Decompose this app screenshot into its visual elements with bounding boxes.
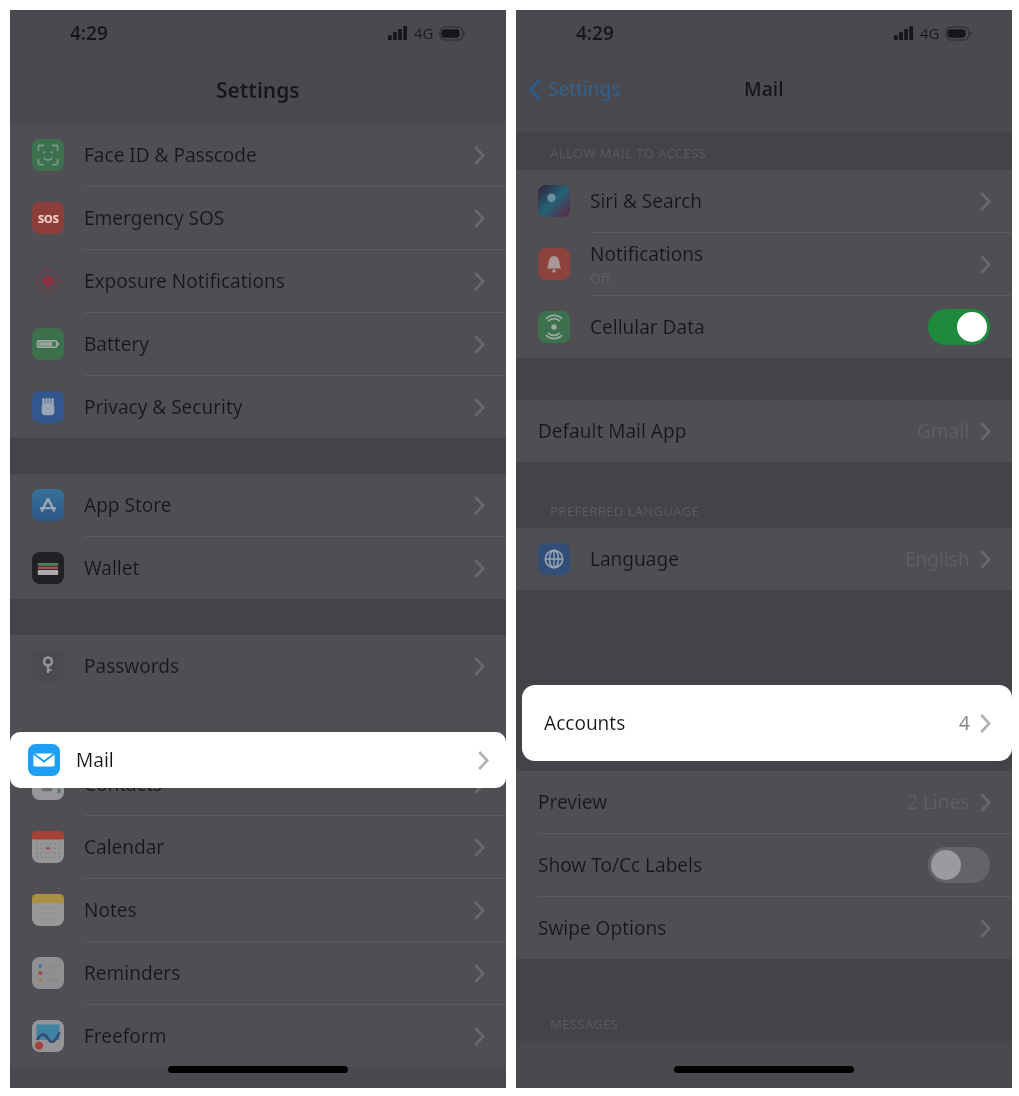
button[interactable]: Off	[928, 847, 990, 883]
staticText: MESSAGE LIST	[550, 745, 642, 763]
staticText: Wallet	[84, 555, 140, 581]
button[interactable]: Default Mail App	[516, 400, 1012, 462]
staticText: Mail	[744, 76, 784, 102]
button[interactable]: Wallet	[10, 537, 506, 599]
staticText: Emergency SOS	[84, 205, 225, 231]
button[interactable]: Privacy & Security	[10, 376, 506, 438]
staticText: App Store	[84, 492, 172, 518]
staticText: Swipe Options	[538, 915, 667, 941]
button[interactable]: On	[928, 309, 990, 345]
staticText: Settings	[548, 76, 621, 102]
staticText: Passwords	[84, 653, 180, 679]
staticText: SOS	[38, 211, 59, 226]
staticText: Face ID & Passcode	[84, 142, 257, 168]
staticText: ALLOW MAIL TO ACCESS	[550, 144, 707, 162]
staticText: PREFERRED LANGUAGE	[550, 502, 700, 520]
staticText: Privacy & Security	[84, 394, 243, 420]
button[interactable]: SOS	[10, 187, 506, 249]
staticText: Show To/Cc Labels	[538, 852, 703, 878]
staticText: Preview	[538, 789, 608, 815]
staticText: Freeform	[84, 1023, 167, 1049]
staticText: Off	[590, 269, 611, 288]
staticText: Mail	[76, 747, 114, 773]
staticText: Language	[590, 546, 679, 572]
button[interactable]: Language	[516, 528, 1012, 590]
button[interactable]: Freeform	[10, 1005, 506, 1067]
button[interactable]: Show To/Cc Labels	[516, 834, 1012, 896]
staticText: Reminders	[84, 960, 181, 986]
staticText: 4:29	[576, 20, 614, 46]
button[interactable]: Preview	[516, 771, 1012, 833]
staticText: Contacts	[84, 771, 162, 797]
staticText: Settings	[216, 76, 300, 105]
button[interactable]: Cellular Data	[516, 296, 1012, 358]
button[interactable]: Calendar	[10, 816, 506, 878]
button[interactable]: Contacts	[10, 753, 506, 815]
button[interactable]: Notifications	[516, 233, 1012, 295]
button[interactable]: Swipe Options	[516, 897, 1012, 959]
staticText: Siri & Search	[590, 188, 703, 214]
button[interactable]: Settings	[516, 72, 629, 106]
button[interactable]: Battery	[10, 313, 506, 375]
button[interactable]: Mail	[10, 732, 506, 788]
staticText: 4G	[920, 23, 940, 43]
staticText: Battery	[84, 331, 149, 357]
staticText: Notifications	[590, 241, 704, 267]
button[interactable]: Accounts	[522, 685, 1012, 761]
staticText: Default Mail App	[538, 418, 687, 444]
staticText: Cellular Data	[590, 314, 705, 340]
button[interactable]: Passwords	[10, 635, 506, 697]
staticText: Gmail	[917, 418, 970, 444]
button[interactable]: Exposure Notifications	[10, 250, 506, 312]
staticText: English	[905, 546, 970, 572]
staticText: Notes	[84, 897, 137, 923]
staticText: 4	[959, 710, 970, 736]
staticText: 2 Lines	[907, 789, 970, 815]
button[interactable]: Notes	[10, 879, 506, 941]
staticText: Calendar	[84, 834, 165, 860]
button[interactable]: Reminders	[10, 942, 506, 1004]
staticText: Exposure Notifications	[84, 268, 285, 294]
staticText: 4G	[414, 23, 434, 43]
staticText: Accounts	[544, 710, 626, 736]
button[interactable]: Face ID & Passcode	[10, 124, 506, 186]
staticText: 4:29	[70, 20, 108, 46]
button[interactable]: App Store	[10, 474, 506, 536]
button[interactable]: Siri & Search	[516, 170, 1012, 232]
staticText: MESSAGES	[550, 1015, 619, 1033]
